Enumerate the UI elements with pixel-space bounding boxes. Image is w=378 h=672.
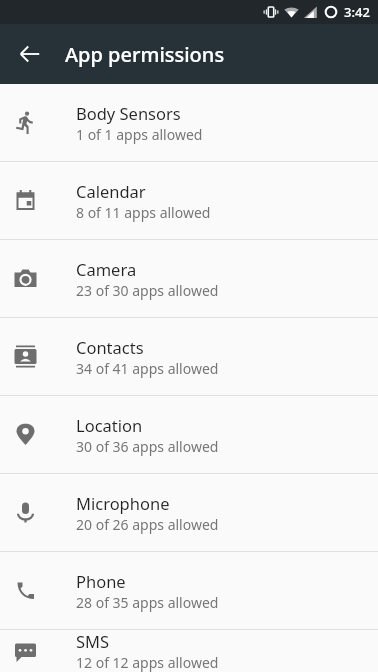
staticText: Phone: [76, 570, 126, 592]
button[interactable]: Calendar: [0, 162, 378, 239]
staticText: Body Sensors: [76, 102, 181, 124]
staticText: Contacts: [76, 336, 144, 358]
staticText: 28 of 35 apps allowed: [76, 593, 219, 612]
staticText: SMS: [76, 630, 110, 652]
button[interactable]: SMS: [0, 630, 378, 672]
staticText: 23 of 30 apps allowed: [76, 281, 219, 300]
staticText: Microphone: [76, 492, 170, 514]
button[interactable]: Camera: [0, 240, 378, 317]
staticText: 8 of 11 apps allowed: [76, 203, 211, 222]
button[interactable]: Body Sensors: [0, 84, 378, 161]
staticText: Camera: [76, 258, 137, 280]
staticText: App permissions: [65, 41, 225, 68]
staticText: Location: [76, 414, 143, 436]
button[interactable]: Microphone: [0, 474, 378, 551]
button[interactable]: Back: [14, 38, 46, 70]
staticText: 20 of 26 apps allowed: [76, 515, 219, 534]
button[interactable]: Location: [0, 396, 378, 473]
staticText: 12 of 12 apps allowed: [76, 653, 219, 672]
button[interactable]: Contacts: [0, 318, 378, 395]
staticText: Calendar: [76, 180, 146, 202]
staticText: 30 of 36 apps allowed: [76, 437, 219, 456]
staticText: 1 of 1 apps allowed: [76, 125, 203, 144]
button[interactable]: Phone: [0, 552, 378, 629]
staticText: 34 of 41 apps allowed: [76, 359, 219, 378]
staticText: 3:42: [344, 3, 370, 21]
